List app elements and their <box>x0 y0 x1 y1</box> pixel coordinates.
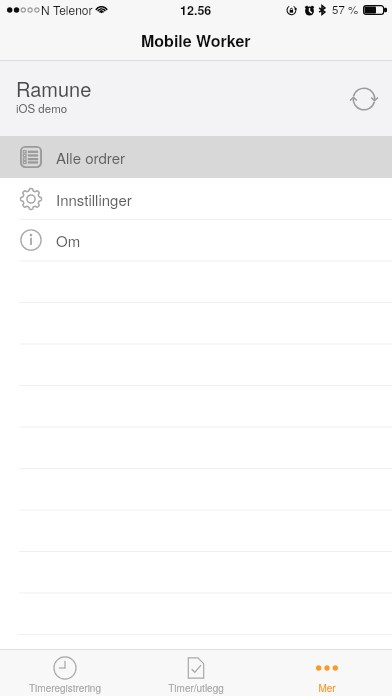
staticText: Mer <box>318 681 336 695</box>
button[interactable]: Mer <box>261 649 392 696</box>
staticText: N Telenor <box>41 1 93 18</box>
staticText: Mobile Worker <box>141 29 251 52</box>
staticText: Om <box>56 230 81 251</box>
staticText: Timer/utlegg <box>168 681 224 695</box>
staticText: 57 % <box>332 1 359 17</box>
button[interactable]: Innstillinger <box>0 178 392 220</box>
button[interactable]: Refresh <box>346 81 382 117</box>
button[interactable]: Timeregistrering <box>0 649 130 696</box>
button[interactable]: Om <box>0 219 392 261</box>
staticText: Timeregistrering <box>29 681 101 695</box>
staticText: Alle ordrer <box>56 147 126 168</box>
button[interactable]: Timer/utlegg <box>130 649 261 696</box>
button[interactable]: Alle ordrer <box>0 136 392 178</box>
staticText: Ramune <box>16 74 92 103</box>
staticText: Innstillinger <box>56 189 132 210</box>
staticText: iOS demo <box>16 100 68 116</box>
staticText: 12.56 <box>180 1 212 19</box>
